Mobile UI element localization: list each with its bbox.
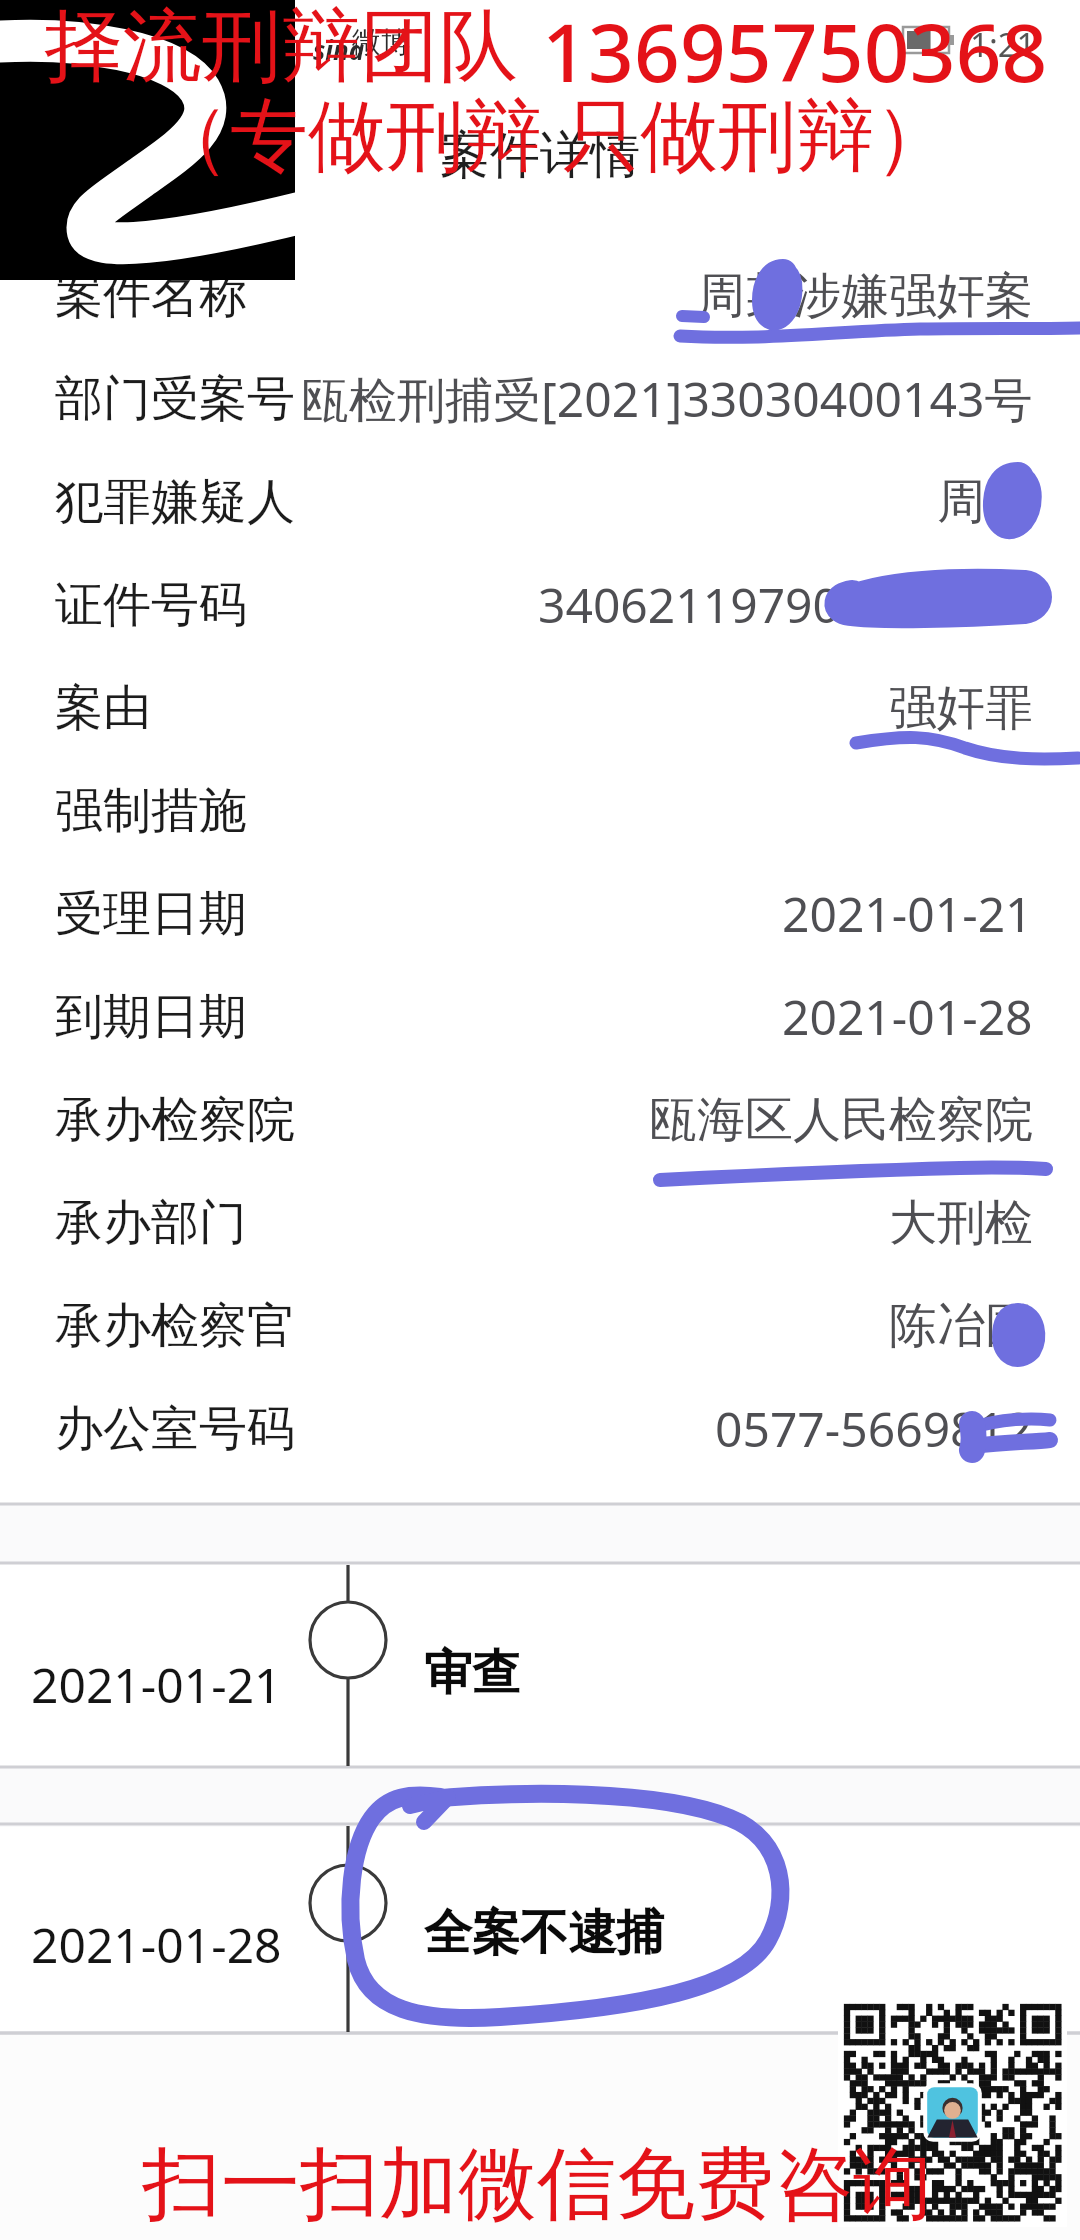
button[interactable]: 部门受案号 — [0, 347, 1080, 450]
staticText: 受理日期 — [55, 884, 247, 944]
staticText: 瓯海区人民检察院 — [649, 1090, 1033, 1150]
button[interactable]: 受理日期 — [0, 862, 1080, 965]
staticText: 2021-01-21 — [782, 881, 1033, 946]
button[interactable]: 办公室号码 — [0, 1377, 1080, 1480]
staticText: 周某 — [937, 472, 1033, 532]
staticText: 强奸罪 — [889, 678, 1033, 738]
staticText: 2021-01-28 — [782, 984, 1033, 1049]
other: Logo — [0, 0, 295, 280]
button[interactable]: 案由 — [0, 656, 1080, 759]
button[interactable]: 2021-01-28 — [0, 1824, 1080, 2033]
staticText: 2021-01-21 — [31, 1652, 282, 1717]
staticText: sina — [313, 32, 365, 67]
staticText: 1:21 — [970, 22, 1036, 67]
staticText: 证件号码 — [55, 575, 247, 635]
staticText: 扫一扫加微信免费咨询 — [142, 2135, 932, 2235]
staticText: （专做刑辩 只做刑辩） — [152, 80, 953, 187]
staticText: 到期日期 — [55, 987, 247, 1047]
staticText: 全案不逮捕 — [424, 1903, 664, 1963]
staticText: 大刑检 — [889, 1193, 1033, 1253]
staticText: 审查 — [424, 1643, 520, 1703]
button[interactable]: 承办检察院 — [0, 1068, 1080, 1171]
staticText: 部门受案号 — [55, 369, 295, 429]
staticText: 0577-5669812 — [715, 1396, 1033, 1461]
button[interactable]: 强制措施 — [0, 759, 1080, 862]
staticText: 340621197904180000 — [538, 572, 1033, 637]
staticText: 2021-01-28 — [31, 1912, 282, 1977]
staticText: 微博 — [352, 24, 410, 61]
staticText: 承办检察官 — [55, 1296, 295, 1356]
staticText: 案由 — [55, 678, 151, 738]
staticText: 择流刑辩团队 — [44, 0, 518, 97]
button[interactable]: 承办部门 — [0, 1171, 1080, 1274]
button[interactable]: 2021-01-21 — [0, 1563, 1080, 1767]
button[interactable]: 犯罪嫌疑人 — [0, 450, 1080, 553]
staticText: 犯罪嫌疑人 — [55, 472, 295, 532]
staticText: 案件名称 — [55, 266, 247, 326]
button[interactable]: 案件名称 — [0, 244, 1080, 347]
button[interactable]: WeChat QR code — [838, 1998, 1067, 2227]
staticText: 瓯检刑捕受[2021]33030400143号 — [301, 366, 1033, 432]
staticText: 陈冶国 — [889, 1296, 1033, 1356]
button[interactable]: 到期日期 — [0, 965, 1080, 1068]
staticText: 承办部门 — [55, 1193, 247, 1253]
button[interactable]: 证件号码 — [0, 553, 1080, 656]
staticText: 周某涉嫌强奸案 — [697, 266, 1033, 326]
button[interactable]: 承办检察官 — [0, 1274, 1080, 1377]
staticText: 案件详情 — [440, 124, 640, 187]
staticText: 承办检察院 — [55, 1090, 295, 1150]
staticText: 13695750368 — [542, 0, 1048, 105]
staticText: 强制措施 — [55, 781, 247, 841]
staticText: 办公室号码 — [55, 1399, 295, 1459]
